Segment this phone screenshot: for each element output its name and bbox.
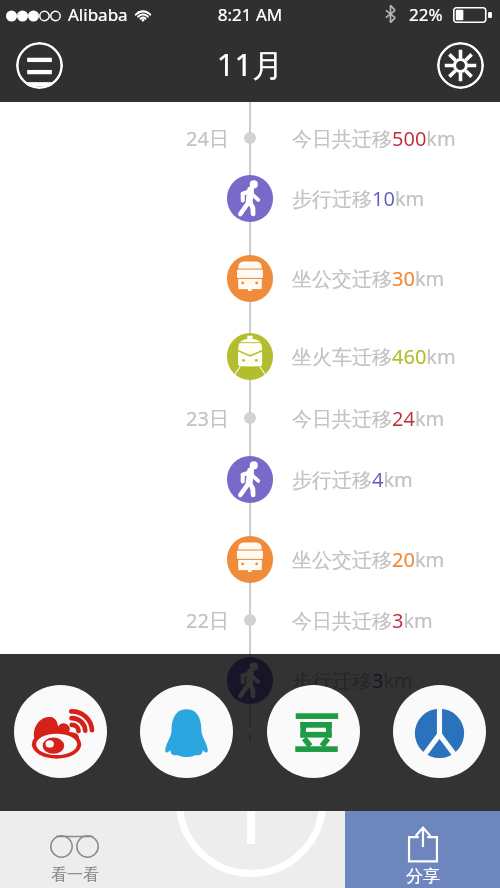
staticText: 今日共迁移500km	[292, 125, 456, 152]
button[interactable]: 坐公交迁移20km	[0, 532, 500, 586]
button[interactable]: 坐公交迁移30km	[0, 251, 500, 305]
staticText: 看一看	[51, 865, 99, 885]
button[interactable]: Weibo	[14, 685, 107, 778]
button[interactable]: 分享	[345, 811, 500, 888]
button[interactable]: Menu	[16, 42, 63, 89]
button[interactable]: QQ	[140, 685, 233, 778]
button[interactable]: 坐火车迁移460km	[0, 329, 500, 383]
staticText: 今日共迁移3km	[292, 607, 433, 634]
button[interactable]: 看一看	[0, 811, 345, 888]
button[interactable]: 22日	[0, 593, 500, 647]
staticText: 11月	[0, 43, 500, 85]
button[interactable]: Brightness	[437, 42, 484, 89]
staticText: 今日共迁移24km	[292, 405, 445, 432]
staticText: 步行迁移4km	[292, 466, 413, 493]
button[interactable]: 23日	[0, 391, 500, 445]
staticText: 分享	[406, 866, 440, 887]
staticText: 22日	[186, 607, 229, 634]
staticText: 23日	[186, 405, 229, 432]
button[interactable]: 步行迁移4km	[0, 452, 500, 506]
staticText: 坐公交迁移20km	[292, 546, 445, 573]
staticText: 步行迁移3km	[292, 667, 413, 694]
staticText: 坐公交迁移30km	[292, 265, 445, 292]
staticText: 步行迁移10km	[292, 185, 425, 212]
staticText: 24日	[186, 125, 229, 152]
button[interactable]: Renren	[393, 685, 486, 778]
button[interactable]: 步行迁移10km	[0, 171, 500, 225]
staticText: 8:21 AM	[0, 3, 500, 26]
staticText: 22%	[409, 3, 443, 26]
staticText: Alibaba	[68, 3, 128, 26]
button[interactable]: Douban	[267, 685, 360, 778]
button[interactable]: Add	[176, 727, 326, 877]
button[interactable]: 24日	[0, 111, 500, 165]
button[interactable]: 步行迁移3km	[0, 653, 500, 707]
staticText: 坐火车迁移460km	[292, 343, 456, 370]
